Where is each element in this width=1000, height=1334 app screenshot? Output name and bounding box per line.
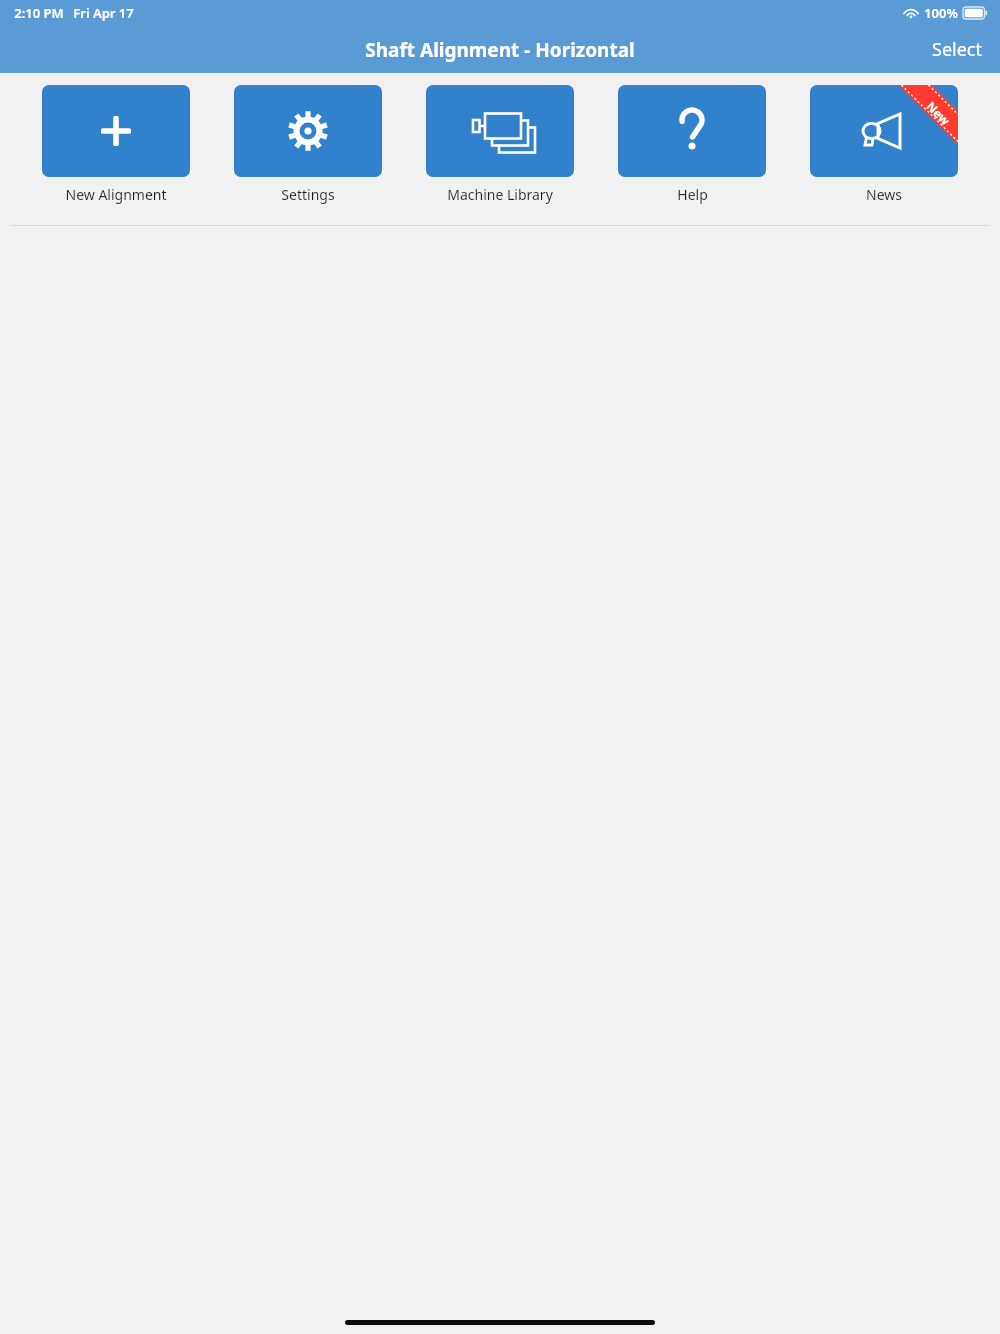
other: Settings — [234, 85, 382, 177]
other: Help — [618, 85, 766, 177]
button[interactable]: News — [788, 85, 980, 204]
staticText: Help — [677, 185, 708, 204]
staticText: 100% — [924, 4, 958, 22]
button[interactable]: Select — [914, 28, 1000, 71]
other: New Alignment — [42, 85, 190, 177]
staticText: Settings — [281, 185, 335, 204]
staticText: 2:10 PM — [14, 4, 64, 22]
staticText: Shaft Alignment - Horizontal — [365, 37, 635, 63]
staticText: News — [866, 185, 902, 204]
button[interactable]: Machine Library — [404, 85, 596, 204]
staticText: New Alignment — [65, 185, 167, 204]
other: News — [810, 85, 958, 177]
staticText: Machine Library — [447, 185, 553, 204]
button[interactable]: Settings — [212, 85, 404, 204]
staticText: Fri Apr 17 — [73, 4, 134, 22]
button[interactable]: New Alignment — [20, 85, 212, 204]
button[interactable]: Help — [596, 85, 788, 204]
other: Machine Library — [426, 85, 574, 177]
staticText: Select — [932, 37, 982, 62]
staticText: New — [923, 98, 954, 128]
